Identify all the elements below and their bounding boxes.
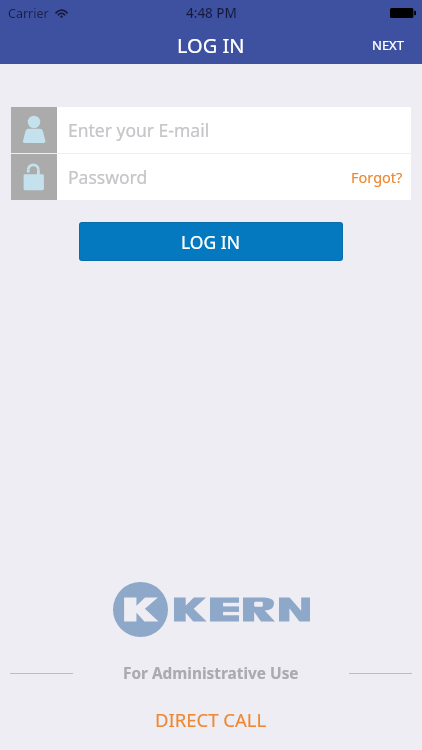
- staticText: LOG IN: [181, 230, 241, 254]
- button[interactable]: Forgot?: [342, 154, 411, 200]
- staticText: NEXT: [372, 36, 404, 54]
- staticText: Carrier: [8, 5, 49, 22]
- staticText: Password: [68, 165, 148, 189]
- staticText: Forgot?: [351, 167, 403, 187]
- staticText: LOG IN: [177, 32, 245, 59]
- button[interactable]: Enter your E-mail: [11, 107, 411, 153]
- staticText: 4:48 PM: [186, 4, 237, 22]
- button[interactable]: NEXT: [358, 26, 422, 64]
- button[interactable]: LOG IN: [80, 223, 342, 260]
- staticText: DIRECT CALL: [155, 707, 267, 732]
- staticText: Enter your E-mail: [68, 118, 210, 142]
- button[interactable]: DIRECT CALL: [135, 703, 287, 736]
- button[interactable]: Password: [11, 154, 411, 200]
- other: Wi-Fi: [55, 7, 68, 20]
- other: Battery: [390, 8, 416, 18]
- staticText: For Administrative Use: [123, 663, 299, 684]
